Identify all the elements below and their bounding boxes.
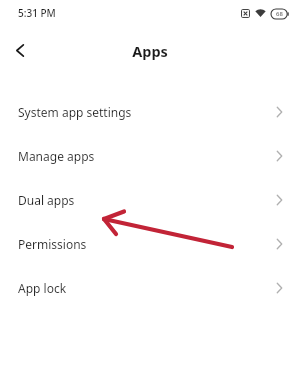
button[interactable]: Dual apps [0, 178, 299, 222]
button[interactable]: Permissions [0, 222, 299, 266]
staticText: System app settings [18, 104, 276, 120]
button[interactable]: Back [0, 32, 40, 69]
staticText: App lock [18, 280, 276, 296]
staticText: Manage apps [18, 148, 276, 164]
button[interactable]: Manage apps [0, 134, 299, 178]
staticText: 5:31 PM [18, 6, 56, 20]
button[interactable]: App lock [0, 266, 299, 310]
button[interactable]: System app settings [0, 90, 299, 134]
staticText: 68 [276, 10, 283, 18]
staticText: Dual apps [18, 192, 276, 208]
staticText: Permissions [18, 236, 276, 252]
staticText: Apps [132, 41, 168, 61]
